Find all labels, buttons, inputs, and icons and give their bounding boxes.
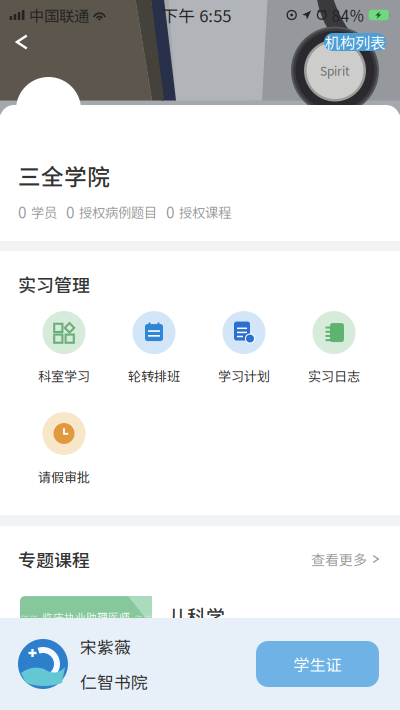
staticText: 机构列表 — [325, 31, 385, 53]
staticText: 实习日志 — [308, 366, 360, 385]
staticText: 专题课程 — [18, 546, 90, 572]
button[interactable]: 机构列表 — [324, 33, 386, 51]
staticText: ≈≈ — [20, 610, 38, 624]
staticText: ≈≈ — [134, 610, 152, 624]
staticText: 科室学习 — [38, 366, 90, 385]
button[interactable]: 请假审批 — [19, 412, 109, 486]
button[interactable]: Back — [0, 27, 44, 57]
staticText: 请假审批 — [38, 467, 90, 486]
staticText: 学习计划 — [218, 366, 270, 385]
staticText: 轮转排班 — [128, 366, 180, 385]
staticText: 0 — [66, 201, 75, 223]
staticText: 仁智书院 — [80, 669, 148, 694]
staticText: Spirit — [320, 62, 350, 79]
staticText: 0 — [166, 201, 175, 223]
button[interactable]: 实习日志 — [289, 311, 379, 385]
staticText: 中国联通 — [29, 4, 89, 26]
staticText: 儿科学 — [168, 602, 225, 629]
staticText: 实习管理 — [18, 271, 90, 297]
staticText: 查看更多 — [311, 549, 367, 569]
staticText: 84% — [332, 4, 364, 26]
button[interactable]: 查看更多 — [311, 549, 380, 569]
staticText: 学员 — [31, 202, 57, 222]
button[interactable]: 轮转排班 — [109, 311, 199, 385]
staticText: 下午 6:55 — [161, 3, 231, 27]
button[interactable]: 学生证 — [256, 641, 379, 687]
staticText: 授权课程 — [179, 202, 231, 222]
staticText: 授权病例题目 — [79, 202, 157, 222]
staticText: 临床执业助理医师 — [42, 609, 130, 625]
staticText: 三全学院 — [18, 159, 110, 192]
button[interactable]: 科室学习 — [19, 311, 109, 385]
staticText: 学生证 — [293, 652, 341, 676]
button[interactable]: 学习计划 — [199, 311, 289, 385]
staticText: 0 — [18, 201, 27, 223]
staticText: 宋紫薇 — [80, 634, 131, 658]
